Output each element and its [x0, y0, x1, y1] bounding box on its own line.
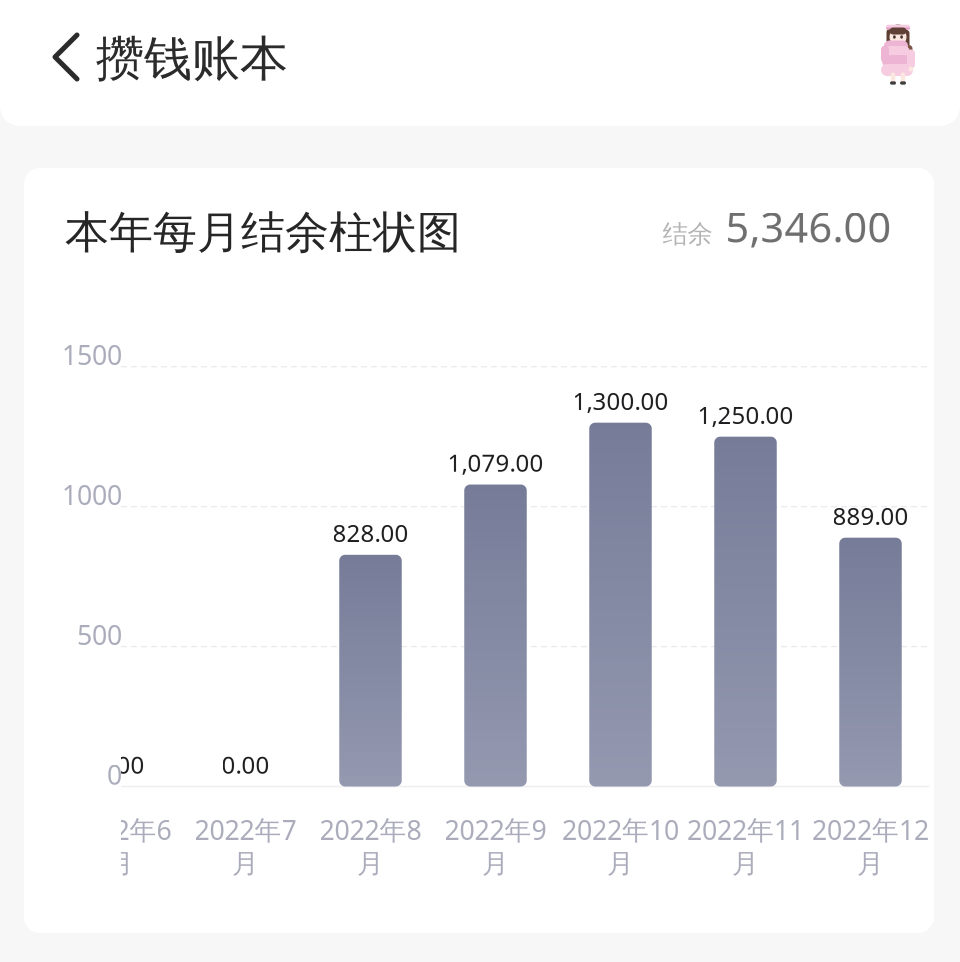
staticText: 月: [357, 847, 384, 880]
staticText: 0.00: [96, 749, 144, 780]
staticText: 月: [607, 847, 634, 880]
staticText: 月: [107, 847, 134, 880]
staticText: 0: [107, 757, 122, 792]
staticText: 2022年11: [687, 812, 804, 847]
staticText: 0.00: [221, 749, 269, 780]
staticText: 2022年7: [194, 812, 296, 847]
staticText: 889.00: [832, 500, 908, 532]
button[interactable]: Back: [37, 20, 95, 94]
staticText: 1,250.00: [697, 399, 793, 431]
staticText: 500: [77, 617, 122, 652]
button[interactable]: Profile: [872, 20, 924, 90]
staticText: 1000: [62, 477, 122, 512]
staticText: 2022年9: [444, 812, 546, 847]
staticText: 月: [732, 847, 759, 880]
staticText: 月: [482, 847, 509, 880]
staticText: 攒钱账本: [96, 29, 288, 88]
staticText: 828.00: [332, 517, 408, 549]
staticText: 月: [232, 847, 259, 880]
staticText: 5,346.00: [725, 199, 891, 254]
staticText: 2022年10: [562, 812, 679, 847]
staticText: 2022年6: [69, 812, 171, 847]
staticText: 结余: [662, 218, 712, 250]
staticText: 1,079.00: [447, 447, 543, 478]
staticText: 2022年8: [319, 812, 421, 847]
staticText: 1500: [62, 337, 122, 372]
staticText: 月: [857, 847, 884, 880]
staticText: 1,300.00: [572, 385, 668, 417]
staticText: 2022年12: [812, 812, 929, 847]
staticText: 本年每月结余柱状图: [65, 205, 461, 259]
